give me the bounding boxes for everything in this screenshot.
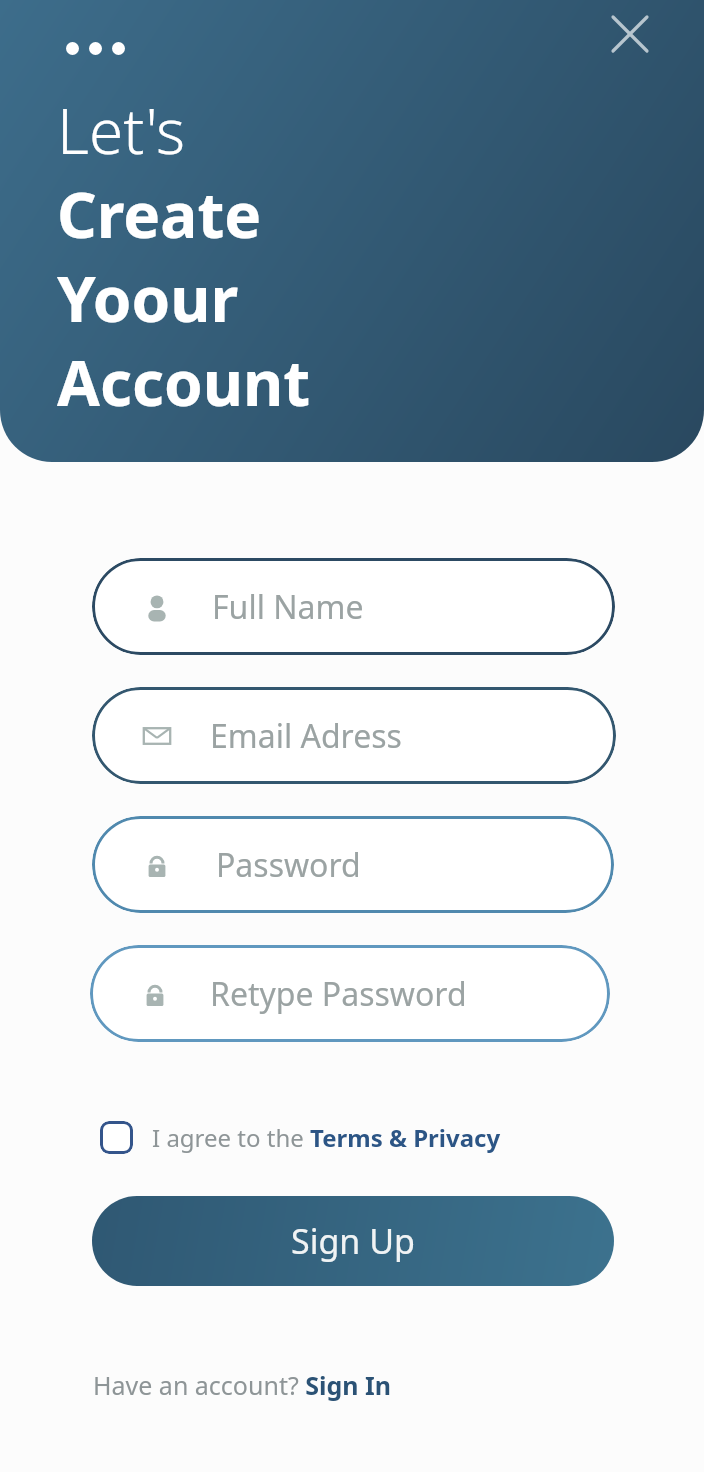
staticText: Yoour [57, 256, 239, 340]
staticText: Retype Password [210, 972, 467, 1016]
button[interactable]: Have an account? Sign In [93, 1364, 392, 1406]
button[interactable]: More options [62, 38, 129, 59]
staticText: Create [57, 172, 262, 256]
staticText: Full Name [212, 585, 364, 629]
staticText: Account [57, 340, 311, 424]
staticText: Email Adress [210, 714, 402, 758]
staticText: Sign Up [291, 1218, 415, 1264]
staticText: I agree to the Terms & Privacy [152, 1121, 501, 1154]
button[interactable]: Close [606, 10, 654, 58]
staticText: Let's [57, 88, 185, 172]
button[interactable]: Email Adress [92, 687, 616, 784]
staticText: Have an account? Sign In [93, 1368, 392, 1402]
button[interactable]: Full Name [92, 558, 615, 655]
button[interactable]: I agree to the Terms & Privacy [96, 1115, 505, 1160]
button[interactable]: Retype Password [90, 945, 610, 1042]
button[interactable]: Password [92, 816, 614, 913]
staticText: Password [216, 843, 361, 887]
button[interactable]: Sign Up [92, 1196, 614, 1286]
